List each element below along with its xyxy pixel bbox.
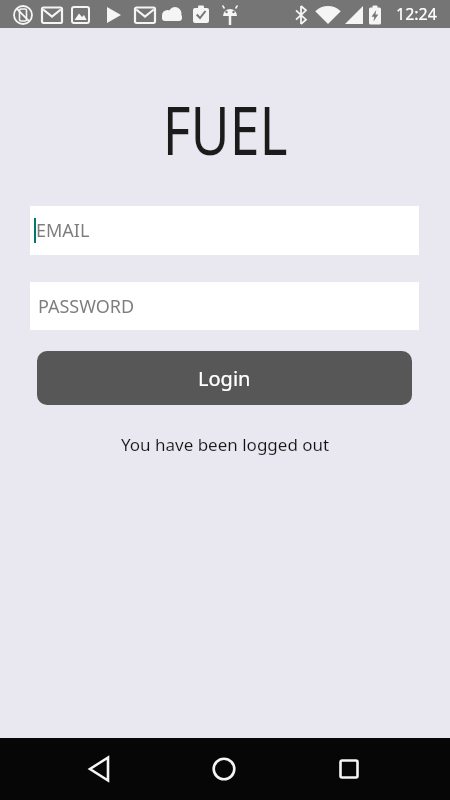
button[interactable]: EMAIL	[30, 206, 419, 255]
staticText: FUEL	[163, 83, 288, 159]
button[interactable]: PASSWORD	[30, 282, 419, 330]
staticText: PASSWORD	[38, 294, 135, 319]
staticText: 12:24	[396, 3, 437, 25]
staticText: EMAIL	[36, 218, 90, 243]
button[interactable]	[327, 747, 371, 791]
button[interactable]	[77, 747, 121, 791]
staticText: You have been logged out	[121, 433, 330, 456]
staticText: Login	[198, 365, 251, 392]
button[interactable]: Login	[37, 351, 412, 405]
button[interactable]	[202, 747, 246, 791]
